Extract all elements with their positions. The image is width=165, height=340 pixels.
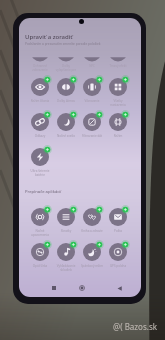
- button[interactable]: Back: [113, 282, 125, 294]
- button[interactable]: Home: [76, 282, 88, 294]
- staticText: Pošta: [104, 229, 132, 233]
- button[interactable]: Kniha a zdravie: [79, 204, 105, 230]
- staticText: Režim: [104, 134, 132, 138]
- staticText: Vibrovanie: [78, 99, 106, 103]
- button[interactable]: Dolby Atmos: [53, 74, 79, 100]
- button[interactable]: Skratky: [53, 204, 79, 230]
- button[interactable]: Režim čítania: [27, 74, 53, 100]
- staticText: Upraviť a zoradiť: [25, 33, 73, 41]
- staticText: Vyhľadávanie skladieb: [52, 264, 80, 272]
- button[interactable]: Všetky nastavenia: [105, 74, 131, 100]
- staticText: Ochranné zobrazenie: [26, 64, 54, 72]
- staticText: Spánkový režim: [78, 264, 106, 268]
- staticText: Skratky: [52, 229, 80, 233]
- button[interactable]: Filtrovanie dát: [79, 109, 105, 135]
- button[interactable]: Pošta: [105, 204, 131, 230]
- staticText: GPS poloha: [104, 264, 132, 268]
- staticText: Ultra šetrenie batérie: [26, 169, 54, 177]
- staticText: Všetky nastavenia: [104, 99, 132, 107]
- button[interactable]: Ultra šetrenie batérie: [27, 144, 53, 170]
- staticText: Nočné upozornenia: [26, 229, 54, 237]
- button[interactable]: Odkazy: [27, 109, 53, 135]
- button[interactable]: Režim: [105, 109, 131, 135]
- staticText: Režim čítania: [26, 99, 54, 103]
- button[interactable]: Vyhľadávanie skladieb: [53, 239, 79, 265]
- button[interactable]: GPS poloha: [105, 239, 131, 265]
- staticText: Dolby vylepšenie pre: [52, 64, 80, 72]
- button[interactable]: Vibrovanie: [79, 74, 105, 100]
- button[interactable]: Nočné upozornenia: [27, 204, 53, 230]
- button[interactable]: Opäť šírka: [27, 239, 53, 265]
- staticText: Filtrovanie dát: [78, 134, 106, 138]
- button[interactable]: Recents: [48, 282, 60, 294]
- button[interactable]: Spánkový režim: [79, 239, 105, 265]
- staticText: Prepínače aplikácií: [25, 189, 62, 195]
- staticText: Dolby Atmos: [52, 99, 80, 103]
- staticText: Opäť šírka: [26, 264, 54, 268]
- staticText: Tmavý efekt: [104, 64, 132, 68]
- staticText: Odkazy: [26, 134, 54, 138]
- staticText: Kniha a zdravie: [78, 229, 106, 233]
- staticText: Podržaním a presunutím zmeníte poradie p…: [25, 42, 101, 46]
- button[interactable]: Nočné svetlo: [53, 109, 79, 135]
- staticText: @( Bazos.sk: [113, 321, 158, 332]
- staticText: Nočné svetlo: [52, 134, 80, 138]
